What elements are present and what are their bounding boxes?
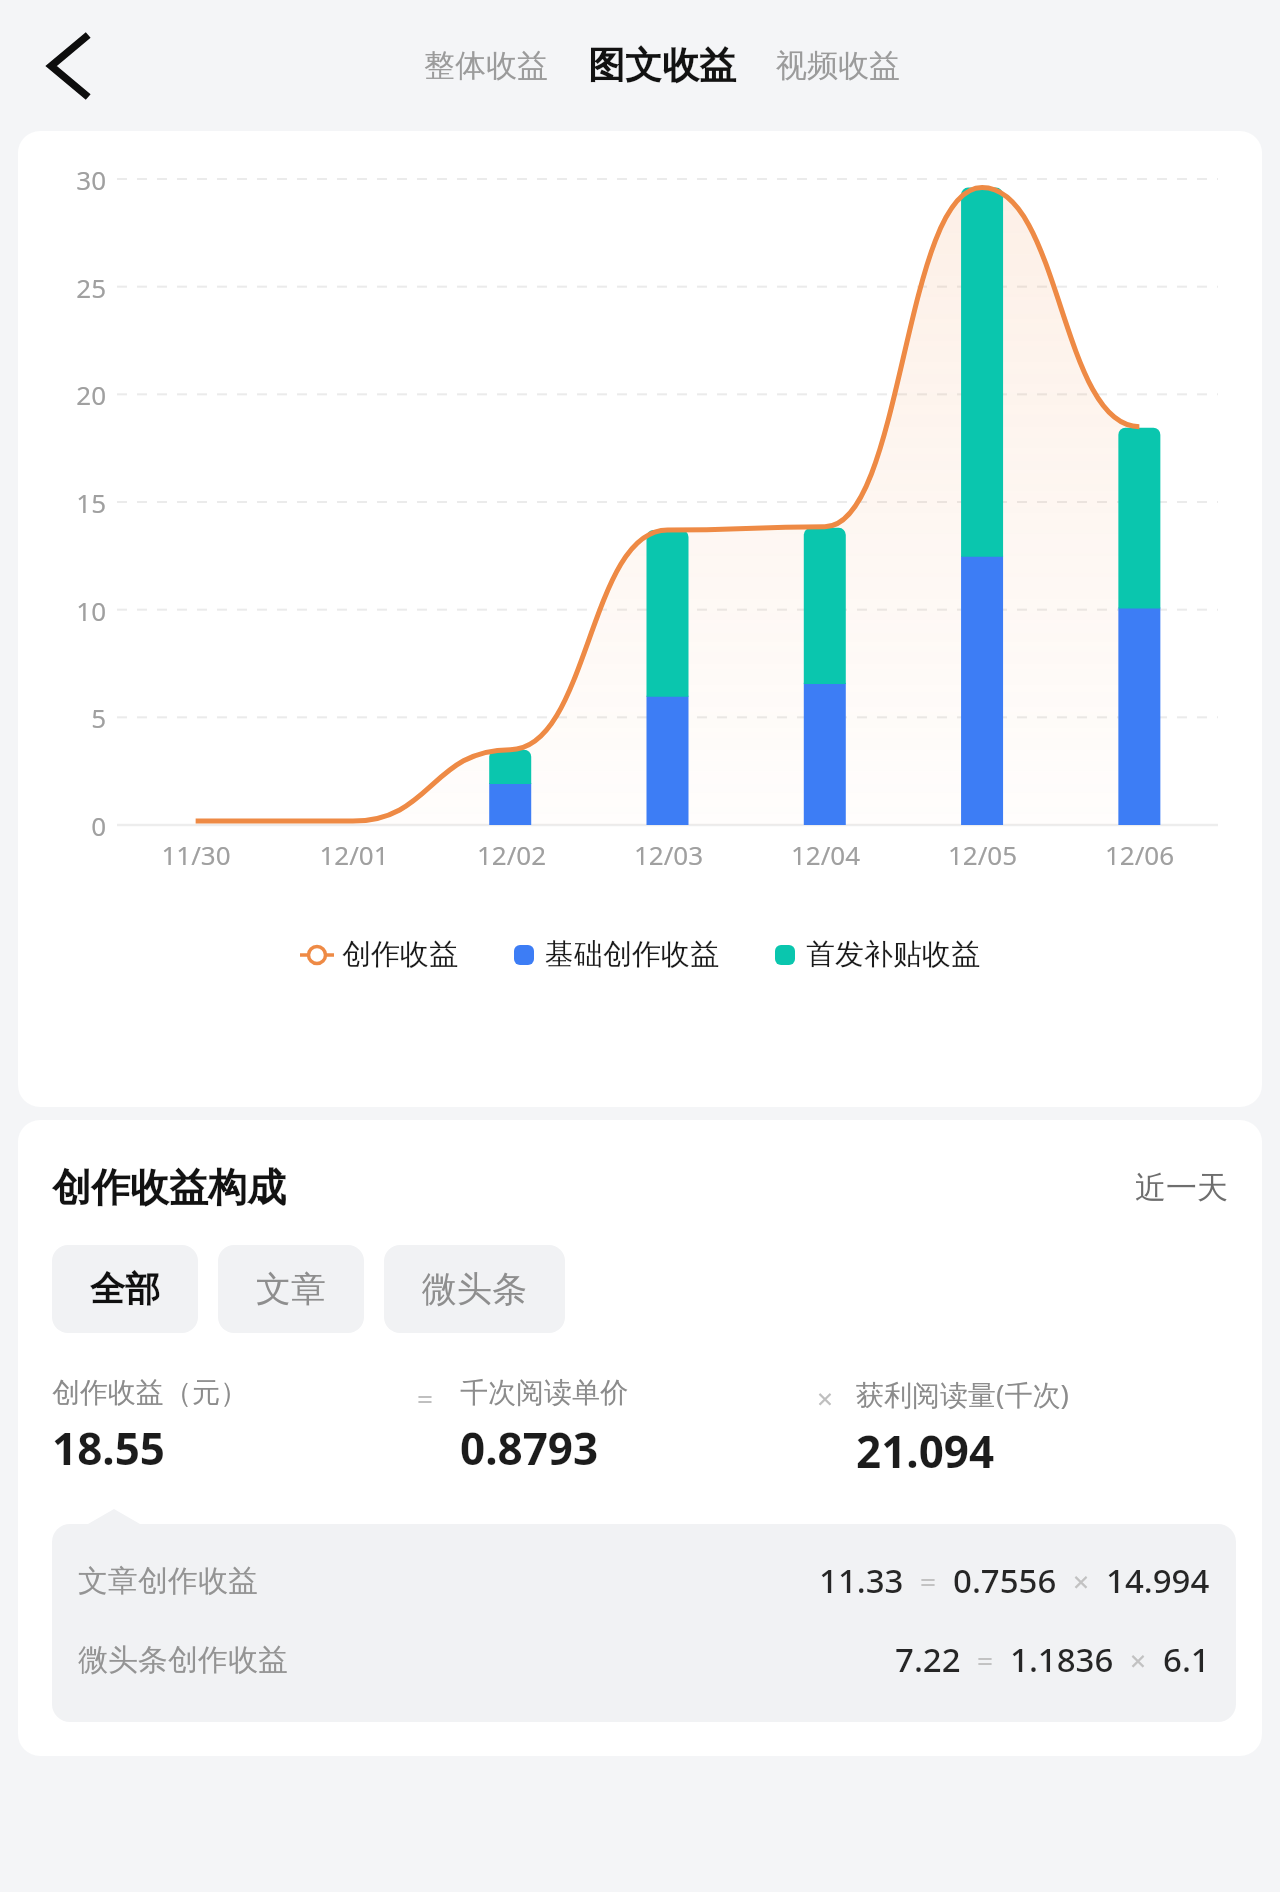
staticText: 0.8793: [460, 1418, 599, 1478]
button[interactable]: 视频收益: [768, 36, 908, 95]
staticText: ×: [1073, 1562, 1090, 1600]
staticText: 基础创作收益: [545, 936, 719, 973]
button[interactable]: 图文收益: [580, 32, 744, 99]
staticText: 5: [26, 700, 106, 735]
staticText: 图文收益: [588, 42, 736, 89]
staticText: 近一天: [1135, 1168, 1228, 1207]
staticText: 10: [26, 593, 106, 628]
staticText: 11.33: [819, 1558, 904, 1603]
staticText: 微头条: [422, 1267, 527, 1311]
staticText: 0.7556: [953, 1558, 1057, 1603]
staticText: 11/30: [117, 837, 275, 872]
staticText: 创作收益构成: [52, 1163, 286, 1212]
button[interactable]: 全部: [52, 1245, 198, 1333]
staticText: 18.55: [52, 1418, 166, 1478]
staticText: 视频收益: [776, 46, 900, 85]
button[interactable]: 近一天: [1127, 1160, 1236, 1215]
button[interactable]: 文章: [218, 1245, 364, 1333]
staticText: 20: [26, 377, 106, 412]
staticText: 首发补贴收益: [806, 936, 980, 973]
staticText: 0: [26, 808, 106, 843]
staticText: 文章: [256, 1267, 326, 1311]
staticText: 12/06: [1061, 837, 1218, 872]
staticText: 21.094: [856, 1421, 995, 1481]
staticText: 14.994: [1106, 1558, 1210, 1603]
staticText: 整体收益: [424, 46, 548, 85]
staticText: 创作收益: [342, 936, 458, 973]
staticText: 7.22: [895, 1637, 961, 1682]
staticText: =: [417, 1379, 434, 1417]
staticText: 12/02: [433, 837, 590, 872]
staticText: 30: [26, 162, 106, 197]
staticText: 12/03: [590, 837, 747, 872]
button[interactable]: 整体收益: [416, 36, 556, 95]
staticText: 千次阅读单价: [460, 1375, 628, 1410]
staticText: ×: [817, 1379, 834, 1417]
staticText: 15: [26, 485, 106, 520]
staticText: 1.1836: [1010, 1637, 1114, 1682]
staticText: 创作收益（元）: [52, 1375, 248, 1410]
staticText: 获利阅读量(千次): [856, 1375, 1069, 1413]
staticText: 6.1: [1163, 1637, 1210, 1682]
staticText: 全部: [90, 1267, 160, 1311]
staticText: 25: [26, 270, 106, 305]
staticText: 微头条创作收益: [78, 1641, 288, 1679]
staticText: 12/05: [904, 837, 1061, 872]
staticText: 12/01: [275, 837, 433, 872]
staticText: ×: [1130, 1641, 1147, 1679]
staticText: =: [977, 1641, 994, 1679]
button[interactable]: 微头条: [384, 1245, 565, 1333]
staticText: 文章创作收益: [78, 1562, 258, 1600]
button[interactable]: Back: [22, 24, 106, 108]
staticText: 12/04: [747, 837, 904, 872]
staticText: =: [920, 1562, 937, 1600]
